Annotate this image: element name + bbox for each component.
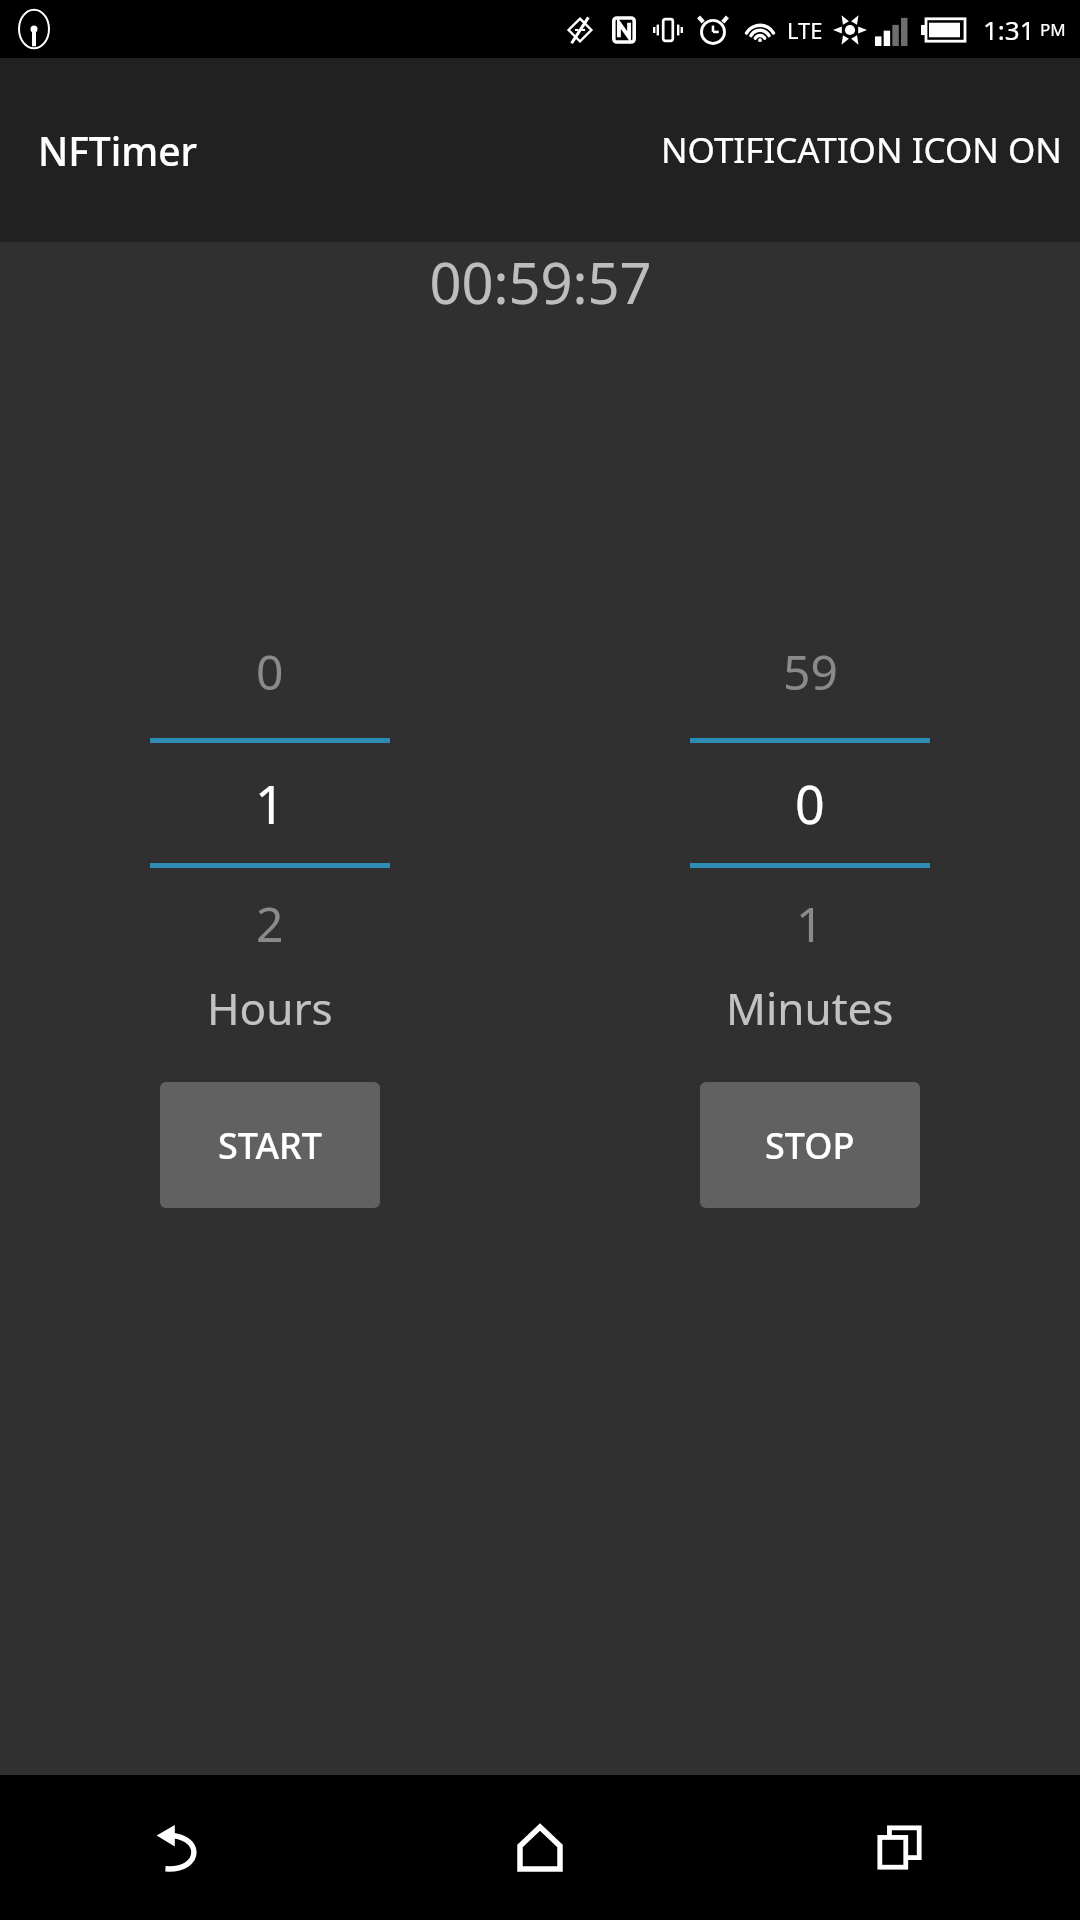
staticText: 0 — [256, 639, 284, 704]
staticText: 0 — [795, 768, 825, 839]
staticText: STOP — [765, 1121, 855, 1170]
button[interactable]: Home — [360, 1775, 720, 1920]
button[interactable]: Back — [0, 1775, 360, 1920]
staticText: 1 — [796, 891, 824, 956]
button[interactable]: 1 — [150, 743, 390, 863]
button[interactable]: Recent apps — [720, 1775, 1080, 1920]
staticText: Minutes — [726, 978, 894, 1038]
button[interactable]: 2 — [150, 868, 390, 978]
button[interactable]: 0 — [690, 743, 930, 863]
staticText: NOTIFICATION ICON ON — [661, 126, 1062, 174]
staticText: Hours — [207, 978, 333, 1038]
staticText: 00:59:57 — [429, 244, 652, 320]
button[interactable]: 59 — [690, 634, 930, 708]
staticText: NFTimer — [38, 124, 198, 177]
button[interactable]: NOTIFICATION ICON ON — [643, 106, 1080, 194]
button[interactable]: 0 — [150, 634, 390, 708]
staticText: PM — [1040, 18, 1066, 41]
button[interactable]: STOP — [700, 1082, 920, 1208]
staticText: START — [218, 1121, 323, 1170]
staticText: 59 — [783, 639, 838, 704]
button[interactable]: 1 — [690, 868, 930, 978]
staticText: LTE — [787, 15, 823, 45]
staticText: 1:31 — [983, 12, 1035, 47]
staticText: 2 — [256, 891, 284, 956]
button[interactable]: START — [160, 1082, 380, 1208]
staticText: 1 — [255, 768, 285, 839]
